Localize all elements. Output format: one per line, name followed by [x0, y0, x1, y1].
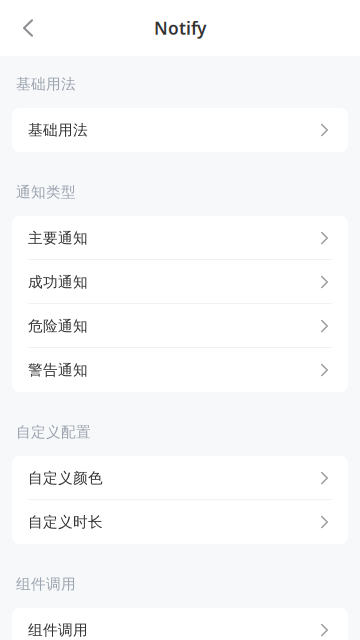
staticText: 组件调用	[28, 621, 88, 639]
staticText: 自定义时长	[28, 513, 103, 531]
button[interactable]: 自定义颜色	[12, 456, 348, 500]
staticText: 组件调用	[16, 575, 76, 593]
staticText: 基础用法	[28, 121, 88, 139]
staticText: 成功通知	[28, 273, 88, 291]
staticText: 主要通知	[28, 229, 88, 247]
button[interactable]: 基础用法	[12, 108, 348, 152]
staticText: 危险通知	[28, 317, 88, 335]
button[interactable]: 主要通知	[12, 216, 348, 260]
staticText: 自定义颜色	[28, 469, 103, 487]
staticText: 警告通知	[28, 361, 88, 379]
button[interactable]: 组件调用	[12, 608, 348, 640]
button[interactable]: Back	[5, 5, 51, 51]
button[interactable]: 危险通知	[12, 304, 348, 348]
button[interactable]: 警告通知	[12, 348, 348, 392]
button[interactable]: 成功通知	[12, 260, 348, 304]
button[interactable]: 自定义时长	[12, 500, 348, 544]
staticText: 通知类型	[16, 183, 76, 201]
staticText: 自定义配置	[16, 423, 91, 441]
staticText: Notify	[154, 16, 206, 39]
staticText: 基础用法	[16, 75, 76, 93]
